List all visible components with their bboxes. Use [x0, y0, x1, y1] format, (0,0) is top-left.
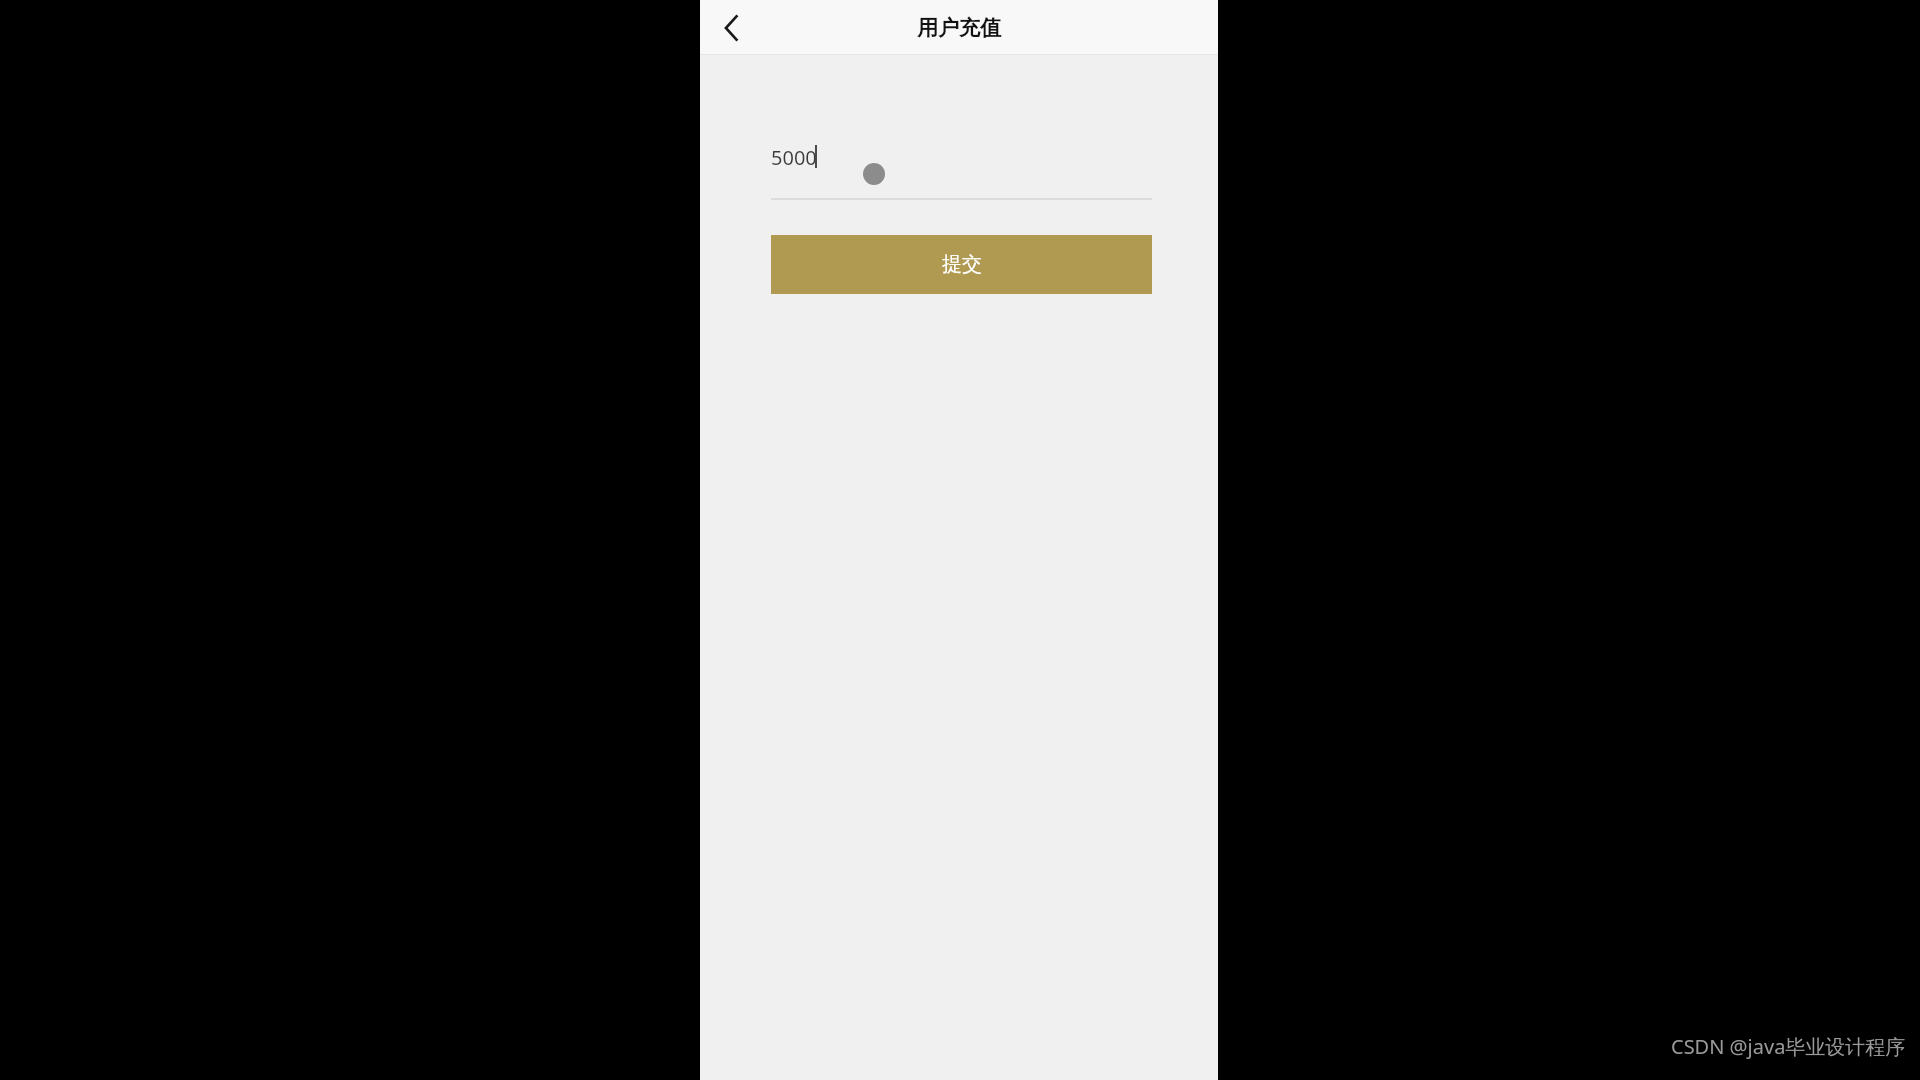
staticText: CSDN @java毕业设计程序 — [1671, 1033, 1906, 1060]
staticText: 用户充值 — [700, 15, 1218, 41]
button[interactable]: 5000 — [771, 140, 1152, 200]
button[interactable]: Back — [708, 4, 756, 52]
button[interactable]: 提交 — [771, 235, 1152, 294]
staticText: 5000 — [771, 144, 817, 171]
staticText: 提交 — [942, 252, 982, 277]
